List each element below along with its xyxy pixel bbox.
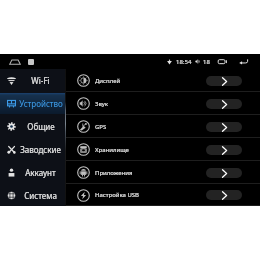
button[interactable]: Open Настройка USB <box>206 190 242 200</box>
button[interactable]: Система <box>0 184 65 206</box>
button[interactable]: Notifications <box>9 56 21 68</box>
staticText: Общие <box>27 121 55 132</box>
button[interactable]: Open Хранилище <box>206 145 242 155</box>
staticText: Звук <box>95 100 109 108</box>
button[interactable]: Приложения <box>66 161 260 184</box>
button[interactable]: Open GPS <box>206 122 242 132</box>
staticText: 18:54 <box>176 58 192 66</box>
staticText: Заводские <box>20 144 61 155</box>
staticText: Хранилище <box>95 146 129 154</box>
button[interactable]: Back <box>239 58 248 66</box>
button[interactable]: Устройство <box>0 92 65 115</box>
button[interactable]: Общие <box>0 115 65 138</box>
staticText: Дисплей <box>95 77 121 85</box>
button[interactable]: Настройка USB <box>66 184 260 206</box>
staticText: Система <box>24 190 57 201</box>
button[interactable]: GPS <box>66 115 260 138</box>
staticText: Wi-Fi <box>31 75 50 86</box>
staticText: Устройство <box>19 98 63 109</box>
button[interactable]: Screenshot <box>28 59 34 65</box>
button[interactable]: Дисплей <box>66 69 260 92</box>
staticText: 18 <box>203 58 210 66</box>
staticText: Приложения <box>95 169 133 177</box>
button[interactable]: Хранилище <box>66 138 260 161</box>
button[interactable]: Заводские <box>0 138 65 161</box>
button[interactable]: Open Дисплей <box>206 76 242 86</box>
button[interactable]: Open Звук <box>206 99 242 109</box>
staticText: Аккаунт <box>25 167 56 178</box>
staticText: Настройка USB <box>95 191 140 199</box>
button[interactable]: Recent apps <box>218 57 228 66</box>
button[interactable]: Аккаунт <box>0 161 65 184</box>
staticText: GPS <box>95 123 107 131</box>
button[interactable]: Wi-Fi <box>0 69 65 92</box>
button[interactable]: Open Приложения <box>206 168 242 178</box>
button[interactable]: Звук <box>66 92 260 115</box>
